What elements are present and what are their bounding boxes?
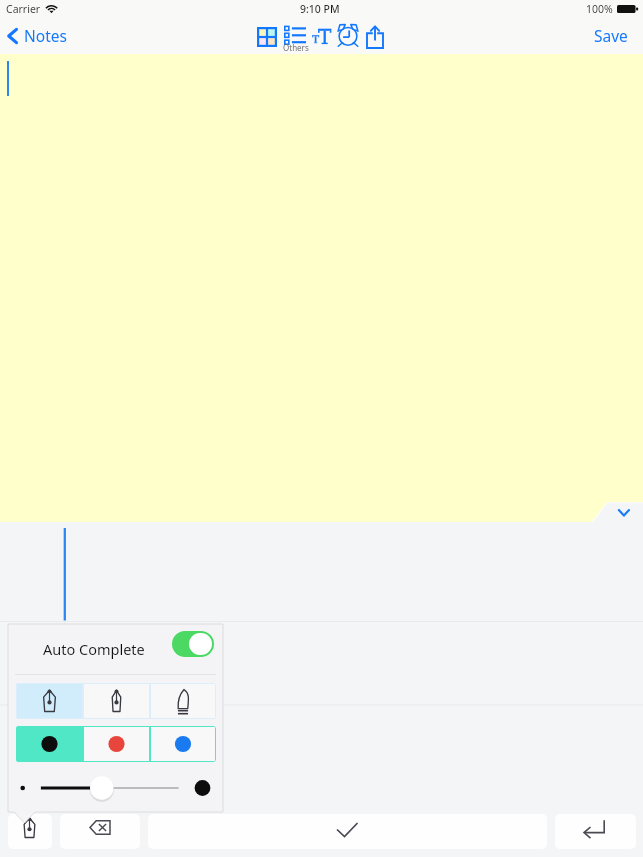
button[interactable]: Pen style 2 — [83, 683, 150, 719]
staticText: Carrier — [6, 2, 41, 16]
staticText: 100% — [586, 2, 613, 16]
staticText: Notes — [24, 25, 67, 46]
button[interactable]: Color 3 — [150, 726, 216, 762]
button[interactable]: Reminder — [337, 22, 360, 48]
button[interactable]: Accept — [148, 814, 547, 849]
button[interactable]: Auto Complete toggle — [172, 631, 214, 657]
button[interactable]: Color 1 — [16, 726, 83, 762]
button[interactable]: Hide keyboard — [592, 502, 643, 522]
button[interactable]: Backspace — [60, 814, 140, 849]
button[interactable]: Pen style 1 — [16, 683, 83, 719]
button[interactable]: Notes — [2, 22, 77, 49]
staticText: 9:10 PM — [300, 2, 340, 16]
button[interactable]: Pen style 3 — [150, 683, 216, 719]
button[interactable]: Others — [284, 25, 310, 51]
staticText: Save — [594, 25, 628, 46]
button[interactable]: Pen — [8, 814, 52, 849]
staticText: Auto Complete — [43, 639, 145, 659]
staticText: Others — [283, 42, 309, 53]
button[interactable]: Share — [366, 22, 384, 50]
button[interactable]: Return — [555, 814, 636, 849]
button[interactable]: Color 2 — [83, 726, 150, 762]
button[interactable]: Text size — [311, 24, 333, 50]
button[interactable]: Grid — [257, 25, 278, 49]
button[interactable]: Save — [580, 20, 643, 51]
